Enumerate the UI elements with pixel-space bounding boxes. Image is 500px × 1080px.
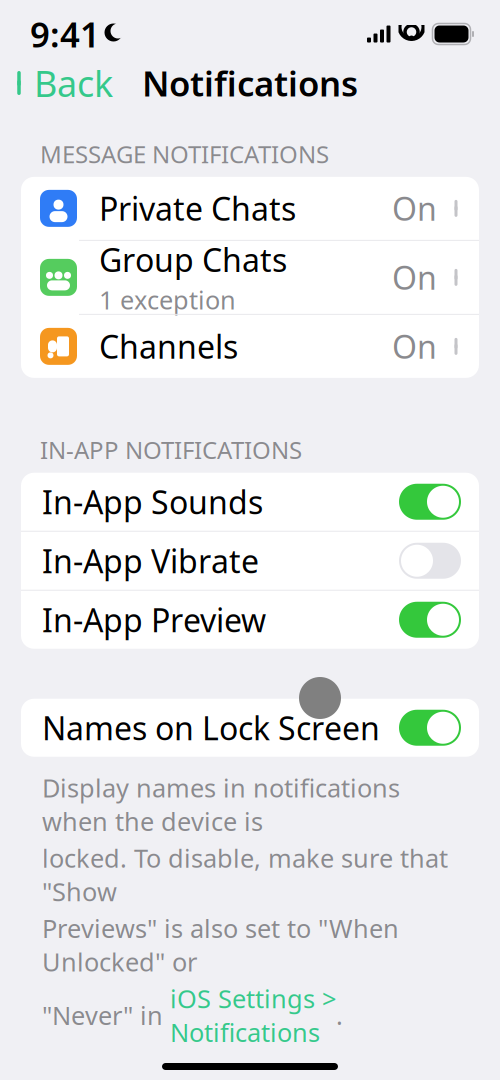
staticText: Display names in notifications when the … — [42, 771, 400, 838]
button[interactable]: In-App Sounds — [21, 473, 479, 531]
staticText: On — [392, 187, 437, 230]
staticText: iOS Settings > Notifications — [170, 982, 336, 1049]
button[interactable]: In-App Preview — [21, 591, 479, 649]
staticText: . — [336, 998, 343, 1032]
staticText: IN-APP NOTIFICATIONS — [40, 434, 302, 466]
staticText: In-App Preview — [42, 598, 266, 641]
button[interactable]: Group Chats — [21, 241, 479, 314]
button[interactable]: Names on Lock Screen — [21, 699, 479, 757]
staticText: 1 exception — [99, 283, 236, 316]
staticText: MESSAGE NOTIFICATIONS — [40, 138, 329, 170]
staticText: "Never" in — [42, 998, 170, 1032]
staticText: Group Chats — [99, 238, 287, 281]
button[interactable]: Private Chats — [21, 177, 479, 240]
staticText: Channels — [99, 325, 238, 368]
staticText: On — [392, 325, 437, 368]
staticText: Private Chats — [99, 187, 296, 230]
staticText: In-App Sounds — [42, 480, 263, 523]
staticText: locked. To disable, make sure that "Show — [42, 841, 448, 908]
button[interactable]: Back — [0, 51, 113, 115]
staticText: Names on Lock Screen — [42, 706, 380, 749]
staticText: Notifications — [142, 60, 358, 106]
staticText: In-App Vibrate — [42, 539, 259, 582]
button[interactable]: In-App Vibrate — [21, 532, 479, 590]
staticText: 9:41 — [30, 11, 100, 57]
button[interactable]: Channels — [21, 315, 479, 378]
staticText: On — [392, 256, 437, 299]
button[interactable]: iOS Settings > Notifications — [170, 982, 336, 1049]
staticText: Back — [34, 59, 113, 107]
staticText: Previews" is also set to "When Unlocked"… — [42, 911, 399, 979]
